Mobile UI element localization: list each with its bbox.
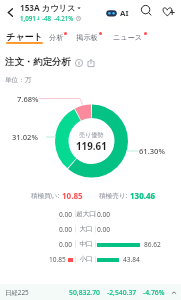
- staticText: 50,832.70: [69, 288, 100, 297]
- staticText: 超大口: [76, 210, 95, 218]
- staticText: 日経225: [5, 288, 29, 297]
- staticText: 86.62: [144, 240, 161, 249]
- staticText: 掲示板: [74, 33, 100, 42]
- button[interactable]: チャート: [4, 26, 45, 44]
- staticText: 31.02%: [12, 132, 38, 142]
- button[interactable]: Info: [74, 58, 83, 67]
- staticText: -2,540.37: [107, 288, 137, 297]
- staticText: 153A カウリス: [20, 2, 76, 13]
- staticText: 0.00: [97, 210, 111, 219]
- button[interactable]: ニュース: [110, 26, 145, 44]
- staticText: 分析: [48, 33, 65, 42]
- button[interactable]: Back: [0, 0, 20, 24]
- staticText: -4.76%: [143, 288, 165, 297]
- button[interactable]: AI assistant: [106, 5, 129, 21]
- staticText: ↓: [36, 15, 41, 21]
- staticText: チャート: [4, 31, 45, 42]
- button[interactable]: Add to watchlist: [162, 6, 177, 21]
- staticText: 積極買い:: [31, 191, 62, 200]
- staticText: 単位：万: [5, 76, 32, 84]
- button[interactable]: 掲示板: [74, 26, 100, 44]
- staticText: 0.00: [59, 210, 73, 219]
- staticText: 1,091: [20, 14, 36, 22]
- staticText: 中口: [79, 240, 93, 248]
- button[interactable]: 153A カウリス: [20, 2, 81, 22]
- staticText: 7.68%: [17, 94, 39, 104]
- button[interactable]: Search: [141, 5, 156, 20]
- button[interactable]: 分析: [48, 26, 65, 44]
- staticText: AI: [120, 8, 129, 19]
- staticText: 積極売り:: [99, 191, 130, 200]
- staticText: 10.85: [49, 255, 66, 264]
- staticText: 10.85: [62, 190, 83, 201]
- staticText: 61.30%: [139, 146, 165, 156]
- staticText: 小口: [79, 255, 93, 263]
- staticText: 売り優勢: [79, 131, 104, 139]
- button[interactable]: Share: [86, 58, 95, 67]
- staticText: 130.46: [130, 190, 156, 201]
- staticText: 0.00: [59, 240, 73, 249]
- staticText: 注文・約定分析: [5, 56, 71, 68]
- button[interactable]: 日経225: [0, 284, 181, 300]
- staticText: -4.21%: [54, 14, 74, 22]
- staticText: 0.00: [97, 225, 111, 234]
- staticText: 119.61: [76, 140, 107, 153]
- staticText: ニュース: [110, 33, 145, 42]
- staticText: 大口: [79, 225, 93, 233]
- staticText: 43.84: [123, 255, 140, 264]
- staticText: 0.00: [59, 225, 73, 234]
- staticText: -48: [42, 14, 52, 22]
